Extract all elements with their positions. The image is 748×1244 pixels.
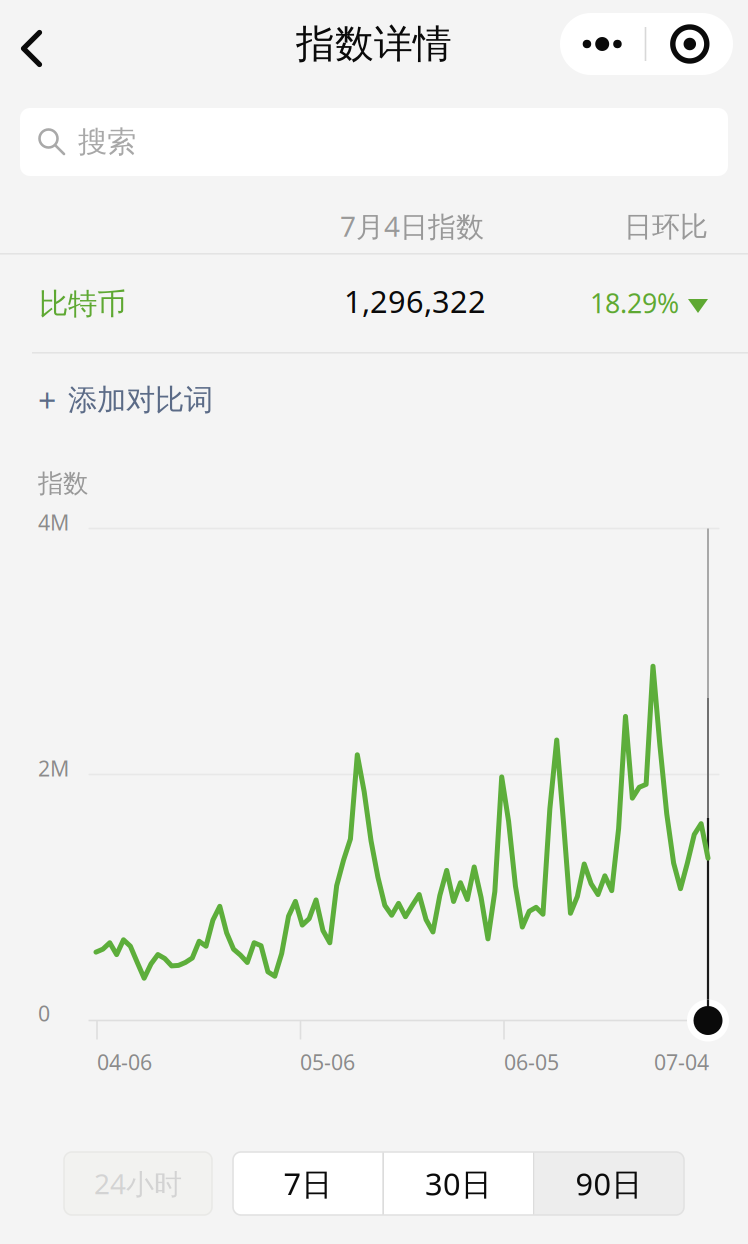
button[interactable]: 搜索	[20, 108, 728, 176]
button[interactable]: Close	[646, 13, 733, 75]
staticText: 指数	[38, 468, 88, 499]
staticText: 4M	[38, 508, 69, 536]
staticText: 0	[38, 999, 50, 1027]
staticText: 30日	[425, 1163, 492, 1204]
button[interactable]: 7日	[233, 1152, 382, 1215]
staticText: 2M	[38, 754, 69, 782]
button[interactable]: 30日	[384, 1152, 533, 1215]
button[interactable]: 90日	[535, 1152, 684, 1215]
button[interactable]: More	[560, 13, 645, 75]
staticText: 日环比	[624, 210, 708, 244]
staticText: 7日	[283, 1163, 332, 1204]
staticText: 04-06	[97, 1048, 152, 1076]
staticText: 7月4日指数	[340, 207, 484, 245]
staticText: 比特币	[39, 286, 126, 322]
staticText: 24小时	[94, 1165, 182, 1202]
staticText: +	[38, 379, 56, 421]
staticText: 05-06	[300, 1048, 355, 1076]
staticText: 搜索	[78, 124, 136, 160]
staticText: 07-04	[654, 1048, 709, 1076]
staticText: 添加对比词	[68, 382, 213, 418]
staticText: 06-05	[504, 1048, 559, 1076]
button[interactable]: Back	[0, 0, 64, 88]
button[interactable]: +	[0, 367, 300, 433]
staticText: 90日	[576, 1163, 643, 1204]
staticText: 指数详情	[296, 20, 452, 68]
button[interactable]: 24小时	[64, 1152, 212, 1215]
staticText: 1,296,322	[344, 281, 486, 321]
staticText: 18.29%	[590, 285, 679, 321]
